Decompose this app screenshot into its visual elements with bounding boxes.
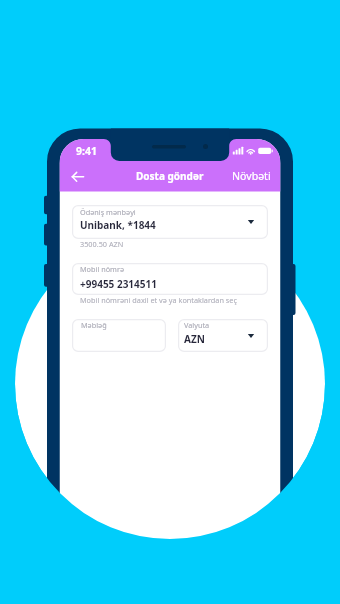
- staticText: Mobil nömrəni daxil et və ya kontaklarda…: [80, 295, 237, 305]
- button[interactable]: [72, 205, 268, 239]
- staticText: Ödəniş mənbəyi: [80, 207, 136, 217]
- staticText: Valyuta: [184, 320, 210, 330]
- staticText: Unibank, *1844: [80, 218, 156, 232]
- button[interactable]: [72, 319, 166, 352]
- staticText: AZN: [184, 332, 205, 346]
- button[interactable]: Dosta göndər: [136, 169, 204, 183]
- staticText: Növbəti: [232, 169, 271, 183]
- staticText: 3500.50 AZN: [80, 239, 124, 249]
- staticText: 9:41: [76, 144, 97, 158]
- button[interactable]: Back: [67, 166, 89, 188]
- button[interactable]: Növbəti: [232, 169, 271, 183]
- button[interactable]: [72, 263, 268, 295]
- button[interactable]: [178, 319, 268, 352]
- staticText: Məbləğ: [81, 320, 107, 330]
- staticText: +99455 2314511: [80, 277, 157, 291]
- staticText: Dosta göndər: [136, 169, 204, 183]
- staticText: Mobil nömrə: [80, 264, 125, 274]
